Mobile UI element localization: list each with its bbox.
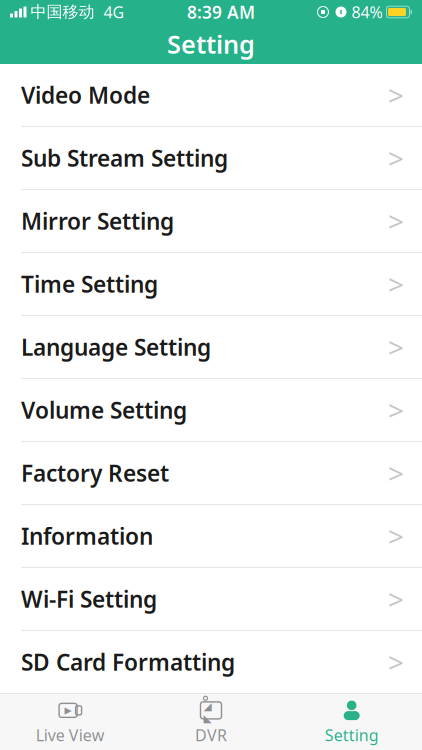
staticText: 84% xyxy=(351,1,382,23)
button[interactable]: ▶ xyxy=(0,693,141,750)
button[interactable]: Information xyxy=(0,505,422,568)
staticText: DVR xyxy=(195,724,227,746)
button[interactable]: ◢◣ xyxy=(141,693,281,750)
staticText: > xyxy=(388,76,404,114)
staticText: Factory Reset xyxy=(21,458,169,488)
button[interactable]: Sub Stream Setting xyxy=(0,127,422,190)
staticText: Mirror Setting xyxy=(21,206,174,236)
staticText: > xyxy=(388,454,404,492)
staticText: > xyxy=(388,391,404,429)
button[interactable]: Volume Setting xyxy=(0,379,422,442)
staticText: Information xyxy=(21,521,153,551)
staticText: > xyxy=(388,328,404,366)
staticText: Device Information xyxy=(21,710,231,740)
staticText: Live View xyxy=(36,724,105,746)
staticText: 4G xyxy=(103,1,124,23)
staticText: Setting xyxy=(325,724,379,746)
staticText: ◢◣ xyxy=(203,700,211,724)
staticText: > xyxy=(388,139,404,177)
staticText: 中国移动 xyxy=(30,2,94,22)
staticText: Sub Stream Setting xyxy=(21,143,228,173)
button[interactable]: Time Setting xyxy=(0,253,422,316)
staticText: Setting xyxy=(167,27,255,61)
button[interactable]: Language Setting xyxy=(0,316,422,379)
staticText: ▶ xyxy=(65,705,72,716)
button[interactable]: SD Card Formatting xyxy=(0,631,422,694)
staticText: 8:39 AM xyxy=(187,0,255,23)
staticText: Time Setting xyxy=(21,269,158,299)
button[interactable]: Mirror Setting xyxy=(0,190,422,253)
button[interactable]: Factory Reset xyxy=(0,442,422,505)
button[interactable]: Setting xyxy=(281,693,422,750)
button[interactable]: Device Information xyxy=(0,694,422,750)
staticText: > xyxy=(388,643,404,681)
staticText: Video Mode xyxy=(21,80,150,110)
staticText: > xyxy=(388,517,404,555)
staticText: Language Setting xyxy=(21,332,211,362)
staticText: > xyxy=(388,202,404,240)
button[interactable]: Wi-Fi Setting xyxy=(0,568,422,631)
staticText: > xyxy=(388,265,404,303)
staticText: > xyxy=(388,580,404,618)
staticText: Volume Setting xyxy=(21,395,187,425)
staticText: Wi-Fi Setting xyxy=(21,584,157,614)
button[interactable]: Video Mode xyxy=(0,64,422,127)
staticText: SD Card Formatting xyxy=(21,647,235,677)
